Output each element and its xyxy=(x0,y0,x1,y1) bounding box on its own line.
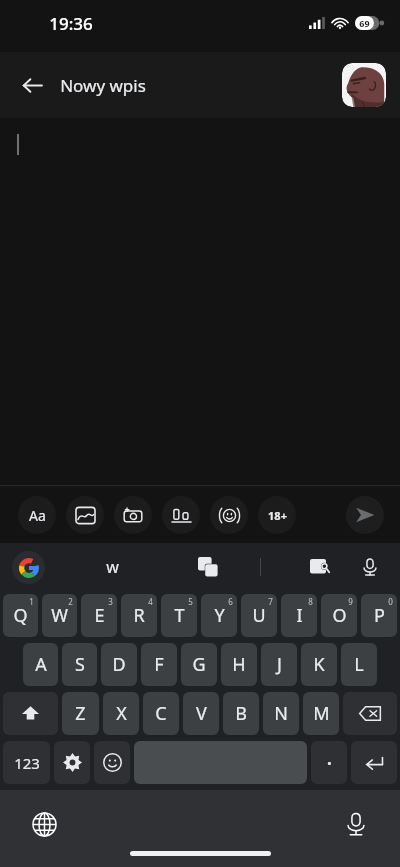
staticText: N xyxy=(274,701,288,726)
staticText: D xyxy=(112,652,126,677)
button[interactable]: Google xyxy=(12,551,45,584)
staticText: 9 xyxy=(348,596,353,607)
button[interactable]: 123 xyxy=(3,741,50,784)
staticText: P xyxy=(374,603,385,628)
staticText: K xyxy=(313,652,325,677)
staticText: 5 xyxy=(188,596,193,607)
button[interactable]: T xyxy=(161,594,197,637)
staticText: Y xyxy=(214,603,225,628)
button[interactable]: Q xyxy=(3,594,38,637)
staticText: Q xyxy=(13,603,28,628)
staticText: 123 xyxy=(14,753,40,773)
button[interactable]: Mark 18 plus xyxy=(258,496,296,534)
button[interactable]: Image search xyxy=(302,549,338,585)
button[interactable]: O xyxy=(321,594,357,637)
button[interactable]: E xyxy=(81,594,117,637)
button[interactable]: A xyxy=(23,643,58,686)
button[interactable]: Sticker xyxy=(210,496,248,534)
staticText: w xyxy=(106,556,119,578)
staticText: J xyxy=(277,652,282,677)
button[interactable]: G xyxy=(181,643,217,686)
staticText: Nowy wpis xyxy=(60,74,146,97)
button[interactable]: R xyxy=(121,594,157,637)
button[interactable]: Back xyxy=(10,63,54,107)
button[interactable]: X xyxy=(103,692,139,735)
button[interactable]: Send xyxy=(346,496,384,534)
button[interactable]: S xyxy=(62,643,97,686)
staticText: W xyxy=(51,603,68,628)
staticText: 69 xyxy=(359,17,370,29)
button[interactable]: Poll xyxy=(162,496,200,534)
staticText: B xyxy=(235,701,247,726)
staticText: 0 xyxy=(388,596,393,607)
button[interactable]: w xyxy=(92,547,132,587)
button[interactable]: C xyxy=(143,692,179,735)
button[interactable]: L xyxy=(341,643,377,686)
button[interactable]: Shift xyxy=(3,692,58,735)
staticText: 18+ xyxy=(268,508,287,523)
staticText: E xyxy=(94,603,105,628)
staticText: X xyxy=(116,701,127,726)
staticText: 7 xyxy=(268,596,273,607)
staticText: S xyxy=(75,652,85,677)
button[interactable]: Emoji xyxy=(94,741,130,784)
staticText: M xyxy=(313,701,330,726)
staticText: 19:36 xyxy=(49,12,93,35)
button[interactable]: K xyxy=(301,643,337,686)
staticText: . xyxy=(327,747,332,770)
staticText: Z xyxy=(75,701,86,726)
button[interactable]: Take photo xyxy=(114,496,152,534)
staticText: F xyxy=(154,652,164,677)
button[interactable]: Change language xyxy=(24,804,64,844)
staticText: 6 xyxy=(228,596,233,607)
button[interactable]: I xyxy=(281,594,317,637)
staticText: 3 xyxy=(108,596,113,607)
button[interactable]: B xyxy=(223,692,259,735)
staticText: A xyxy=(35,652,47,677)
button[interactable]: V xyxy=(183,692,219,735)
staticText: Aa xyxy=(29,506,46,525)
button[interactable]: P xyxy=(361,594,397,637)
staticText: H xyxy=(232,652,246,677)
button[interactable]: Translate xyxy=(190,549,226,585)
staticText: G xyxy=(192,652,206,677)
button[interactable]: Enter xyxy=(351,741,397,784)
button[interactable]: Z xyxy=(62,692,99,735)
button[interactable]: J xyxy=(261,643,297,686)
staticText: 1 xyxy=(29,596,34,607)
staticText: C xyxy=(155,701,167,726)
button[interactable]: D xyxy=(101,643,137,686)
button[interactable]: N xyxy=(263,692,299,735)
staticText: U xyxy=(252,603,266,628)
button[interactable]: Profile xyxy=(342,63,386,107)
button[interactable]: Y xyxy=(201,594,237,637)
button[interactable]: Add image xyxy=(66,496,104,534)
button[interactable]: Voice input xyxy=(352,549,388,585)
button[interactable]: Period xyxy=(311,741,347,784)
button[interactable]: Voice typing xyxy=(336,804,376,844)
button[interactable]: M xyxy=(303,692,339,735)
staticText: O xyxy=(332,603,347,628)
staticText: R xyxy=(133,603,145,628)
staticText: I xyxy=(296,603,303,628)
button[interactable]: Settings xyxy=(54,741,90,784)
staticText: 4 xyxy=(148,596,153,607)
staticText: L xyxy=(354,652,364,677)
staticText: 8 xyxy=(308,596,313,607)
button[interactable]: H xyxy=(221,643,257,686)
button[interactable]: Backspace xyxy=(343,692,397,735)
button[interactable]: W xyxy=(42,594,77,637)
staticText: 2 xyxy=(68,596,73,607)
staticText: V xyxy=(196,701,207,726)
button[interactable]: U xyxy=(241,594,277,637)
button[interactable]: F xyxy=(141,643,177,686)
button[interactable]: Format text xyxy=(18,496,56,534)
staticText: T xyxy=(174,603,185,628)
